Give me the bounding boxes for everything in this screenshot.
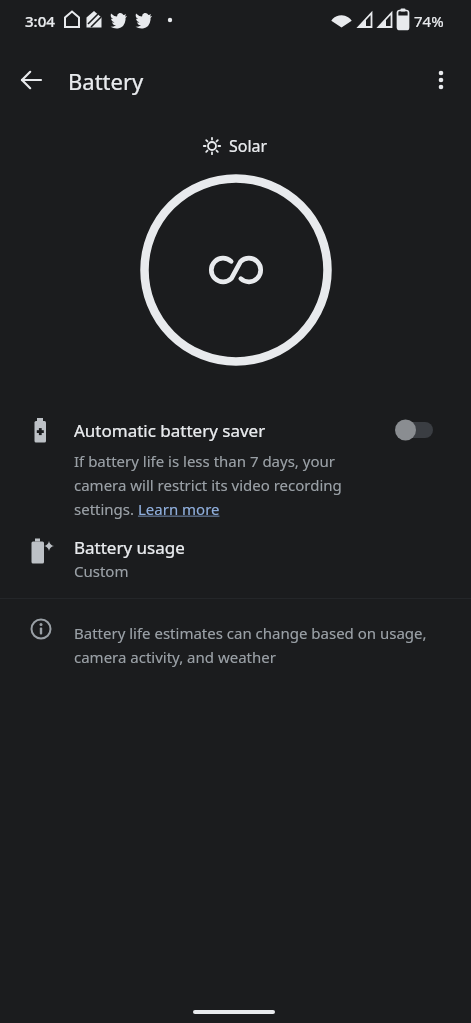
staticText: Battery life estimates can change based … bbox=[74, 623, 427, 667]
button[interactable] bbox=[18, 66, 46, 94]
staticText: Battery usage bbox=[74, 536, 185, 559]
button[interactable] bbox=[427, 62, 455, 98]
staticText: If battery life is less than 7 days, you… bbox=[74, 451, 342, 519]
staticText: Battery bbox=[68, 66, 144, 96]
staticText: Custom bbox=[74, 561, 129, 581]
staticText: 74% bbox=[414, 11, 444, 31]
staticText: Automatic battery saver bbox=[74, 419, 266, 442]
staticText: Solar bbox=[229, 135, 268, 157]
button[interactable]: Automatic battery saver bbox=[0, 405, 471, 527]
staticText: 3:04 bbox=[25, 11, 55, 31]
button[interactable]: Battery usage bbox=[0, 530, 471, 592]
button[interactable] bbox=[394, 417, 434, 443]
